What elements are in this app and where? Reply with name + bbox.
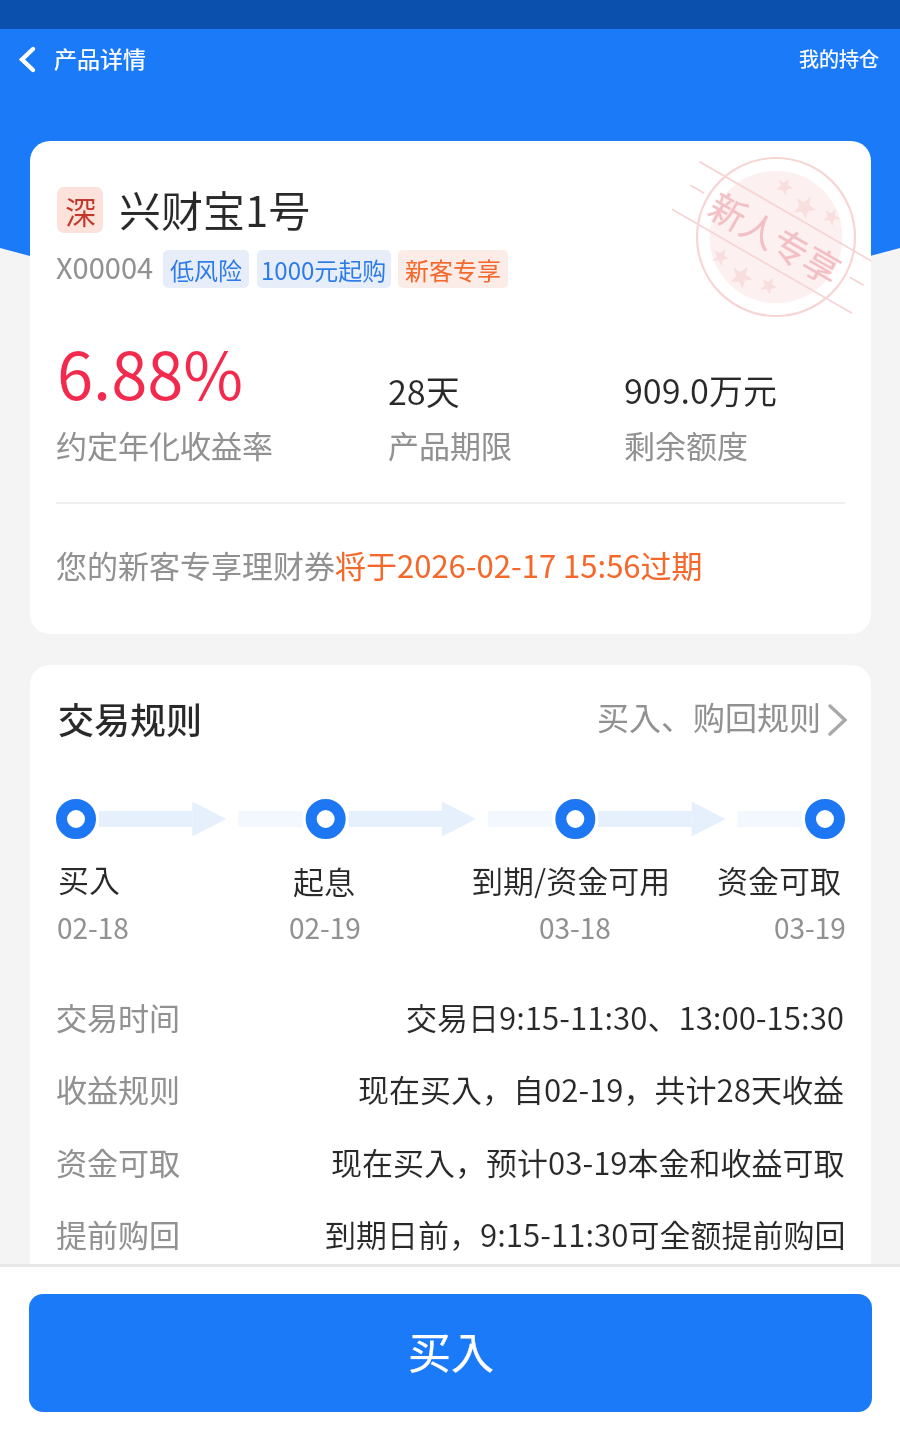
staticText: 交易日9:15-11:30、13:00-15:30 [406, 994, 845, 1039]
staticText: 剩余额度 [624, 422, 748, 467]
staticText: 03-18 [539, 907, 611, 948]
staticText: 到期日前，9:15-11:30可全额提前购回 [325, 1211, 846, 1256]
staticText: 深 [65, 188, 96, 233]
staticText: 新人专享 [701, 178, 852, 296]
staticText: 低风险 [170, 252, 242, 287]
staticText: 交易时间 [56, 994, 180, 1039]
staticText: 将于2026-02-17 15:56过期 [335, 542, 703, 587]
staticText: 我的持仓 [799, 44, 879, 73]
staticText: 现在买入，自02-19，共计28天收益 [358, 1066, 844, 1111]
staticText: 新客专享 [405, 252, 501, 287]
staticText: 909.0万元 [624, 365, 777, 414]
staticText: 产品期限 [388, 422, 512, 467]
staticText: 现在买入，预计03-19本金和收益可取 [331, 1139, 845, 1184]
staticText: 收益规则 [56, 1066, 180, 1111]
button[interactable]: 我的持仓 [777, 29, 900, 87]
staticText: 买入、购回规则 [597, 693, 822, 739]
staticText: 您的新客专享理财券 [56, 542, 335, 587]
staticText: 02-19 [289, 907, 361, 948]
staticText: 1000元起购 [261, 252, 387, 287]
staticText: 到期/资金可用 [472, 857, 671, 902]
staticText: 兴财宝1号 [119, 178, 311, 239]
button[interactable]: 买入 [29, 1294, 872, 1412]
staticText: 6.88% [57, 325, 244, 419]
button[interactable]: 交易规则 [56, 675, 845, 755]
staticText: 约定年化收益率 [56, 422, 273, 467]
staticText: 产品详情 [54, 41, 146, 74]
staticText: 资金可取 [56, 1139, 180, 1184]
button[interactable]: 返回 [0, 29, 53, 87]
staticText: 03-19 [774, 907, 846, 948]
staticText: 02-18 [57, 907, 129, 948]
staticText: 提前购回 [56, 1211, 180, 1256]
staticText: X00004 [56, 245, 154, 287]
staticText: 资金可取 [717, 857, 841, 902]
staticText: 交易规则 [58, 692, 203, 744]
staticText: 28天 [388, 366, 460, 415]
staticText: 买入 [58, 856, 120, 901]
staticText: 起息 [293, 858, 355, 903]
staticText: 买入 [408, 1319, 494, 1381]
